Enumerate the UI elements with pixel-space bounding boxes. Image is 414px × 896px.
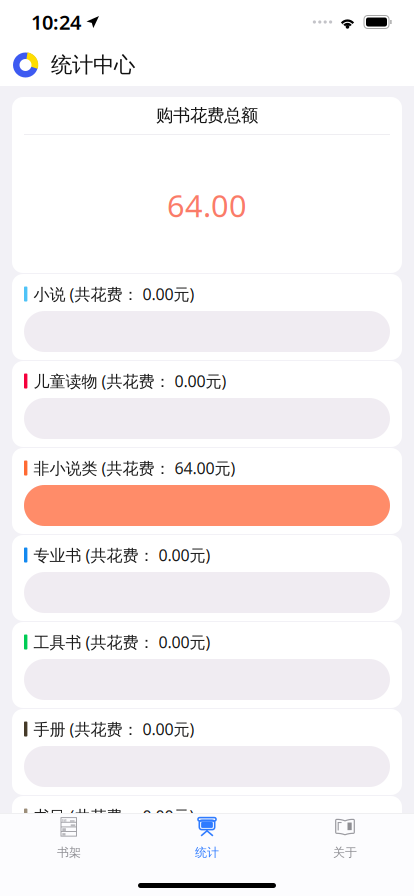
button[interactable]: 关于: [276, 813, 414, 862]
staticText: 统计中心: [51, 52, 135, 78]
button[interactable]: 手册 (共花费： 0.00元): [12, 709, 402, 795]
staticText: 书目 (共花费： 0.00元): [33, 805, 194, 827]
button[interactable]: 书架: [0, 813, 138, 862]
button[interactable]: 统计: [138, 813, 276, 862]
staticText: 统计: [195, 845, 219, 860]
button[interactable]: 工具书 (共花费： 0.00元): [12, 622, 402, 708]
staticText: 64.00: [167, 185, 247, 226]
staticText: 书架: [57, 845, 81, 860]
staticText: 关于: [333, 845, 357, 860]
staticText: 手册 (共花费： 0.00元): [33, 718, 194, 740]
button[interactable]: 书目 (共花费： 0.00元): [12, 796, 402, 882]
staticText: 10:24: [31, 9, 81, 35]
staticText: 儿童读物 (共花费： 0.00元): [33, 370, 226, 392]
staticText: 非小说类 (共花费： 64.00元): [33, 457, 235, 479]
button[interactable]: 小说 (共花费： 0.00元): [12, 274, 402, 360]
staticText: 专业书 (共花费： 0.00元): [33, 544, 210, 566]
button[interactable]: 儿童读物 (共花费： 0.00元): [12, 361, 402, 447]
staticText: 小说 (共花费： 0.00元): [33, 283, 194, 305]
staticText: 购书花费总额: [156, 105, 258, 126]
button[interactable]: 专业书 (共花费： 0.00元): [12, 535, 402, 621]
button[interactable]: 非小说类 (共花费： 64.00元): [12, 448, 402, 534]
staticText: 工具书 (共花费： 0.00元): [33, 631, 210, 653]
